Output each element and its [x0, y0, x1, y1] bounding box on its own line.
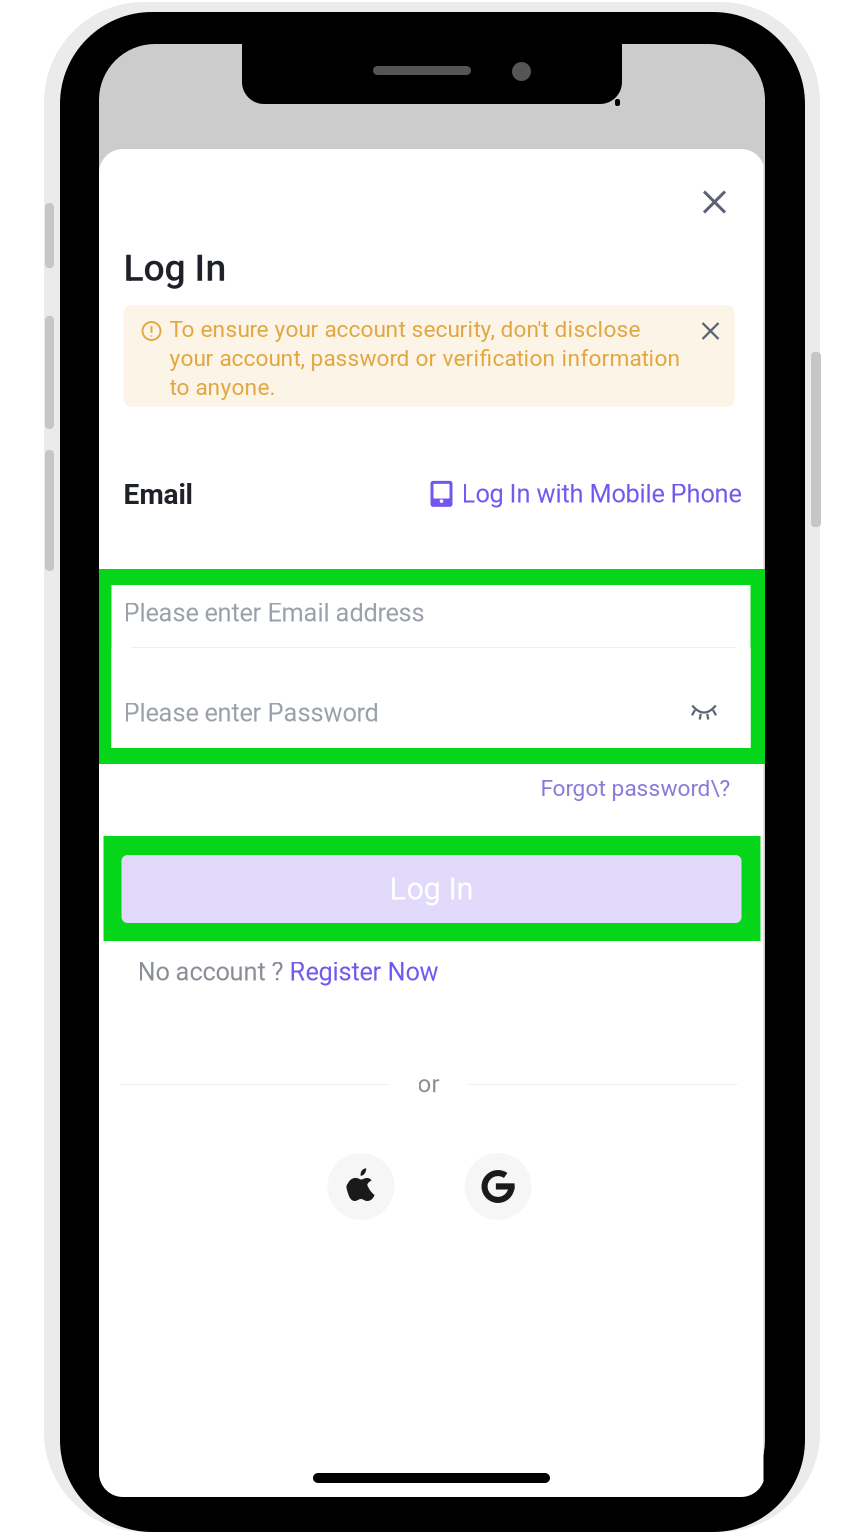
button[interactable]: Sign in with Google	[464, 1153, 531, 1220]
staticText: To ensure your account security, don't d…	[169, 316, 640, 343]
staticText: your account, password or verification i…	[169, 345, 680, 372]
button[interactable]: Please enter Email address	[111, 585, 750, 647]
staticText: Register Now	[283, 957, 438, 987]
button[interactable]: Close	[692, 180, 736, 224]
staticText: Log In with Mobile Phone	[461, 479, 741, 509]
button[interactable]: Log In	[121, 855, 741, 923]
staticText: No account ?	[137, 957, 283, 987]
button[interactable]: Forgot password\?	[540, 775, 730, 802]
staticText: Please enter Email address	[123, 598, 424, 628]
staticText: or	[417, 1070, 439, 1098]
button[interactable]: Register Now	[283, 957, 438, 987]
staticText: to anyone.	[169, 374, 275, 401]
button[interactable]: Please enter Password	[111, 648, 750, 748]
staticText: Log In	[389, 871, 473, 907]
button[interactable]: Sign in with Apple	[327, 1153, 394, 1220]
staticText: Log In	[123, 246, 226, 290]
staticText: Email	[123, 478, 192, 511]
button[interactable]: Dismiss notice	[695, 316, 725, 346]
button[interactable]: Log In with Mobile Phone	[430, 479, 741, 509]
staticText: Forgot password\?	[540, 775, 730, 802]
staticText: Please enter Password	[123, 698, 378, 728]
